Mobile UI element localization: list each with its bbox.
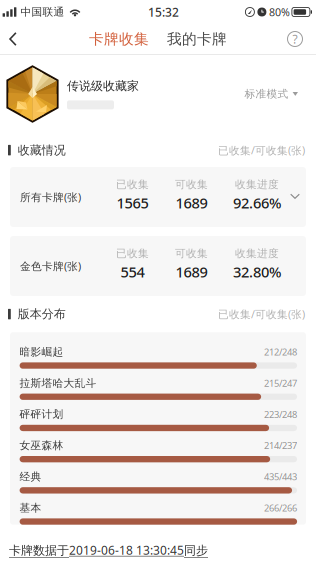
staticText: 收集进度 [235,247,279,260]
staticText: 版本分布 [18,307,66,321]
staticText: 212/248 [264,346,297,358]
staticText: 可收集 [175,247,208,260]
staticText: 92.66% [233,193,281,213]
staticText: 女巫森林 [20,439,64,452]
button[interactable]: 标准模式 [239,81,304,106]
staticText: 金色卡牌(张) [20,259,81,273]
staticText: 传说级收藏家 [67,79,139,93]
staticText: 223/248 [264,408,297,420]
staticText: 80% [269,5,290,19]
staticText: 15:32 [148,4,179,20]
staticText: 1689 [175,193,207,213]
staticText: 已收集 [116,178,149,191]
staticText: 我的卡牌 [167,30,227,48]
staticText: 266/266 [264,502,297,514]
staticText: 卡牌数据于2019-06-18 13:30:45同步 [9,542,208,558]
staticText: 已收集 [116,247,149,260]
button[interactable]: 所有卡牌(张) [10,167,306,227]
button[interactable]: 卡牌收集 [89,24,149,54]
staticText: 已收集/可收集(张) [218,143,305,157]
staticText: 拉斯塔哈大乱斗 [20,376,97,390]
staticText: 砰砰计划 [20,408,64,421]
staticText: 554 [120,262,144,282]
staticText: 卡牌收集 [89,30,149,48]
staticText: 收集进度 [235,178,279,191]
button[interactable]: 金色卡牌(张) [10,236,306,296]
staticText: 收藏情况 [18,143,66,157]
button[interactable]: Back [0,24,26,54]
staticText: 中国联通 [20,5,64,18]
staticText: 可收集 [175,178,208,191]
staticText: 32.80% [233,262,281,282]
staticText: ? [292,31,297,47]
staticText: 214/237 [264,439,297,452]
staticText: 215/247 [264,377,297,389]
staticText: 已收集/可收集(张) [218,307,305,321]
staticText: 暗影崛起 [20,345,64,358]
staticText: 标准模式 [245,87,289,100]
staticText: 1565 [116,193,148,213]
staticText: 1689 [175,262,207,282]
staticText: 435/443 [264,470,297,483]
button[interactable]: 卡牌数据于2019-06-18 13:30:45同步 [0,533,316,567]
staticText: 经典 [20,470,42,483]
button[interactable]: Help [280,24,316,54]
staticText: 基本 [20,501,42,514]
staticText: 所有卡牌(张) [20,190,81,204]
button[interactable]: 我的卡牌 [167,24,227,54]
